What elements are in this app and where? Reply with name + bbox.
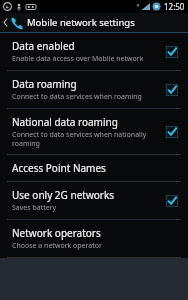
button[interactable]: Toggle	[166, 195, 178, 207]
button[interactable]: Access Point Names	[0, 155, 188, 181]
staticText: Choose a network operator	[12, 241, 102, 251]
button[interactable]: National data roaming	[0, 109, 188, 154]
staticText: Connect to data services when nationally…	[12, 130, 147, 148]
button[interactable]: Toggle	[166, 84, 178, 96]
staticText: Saves battery	[12, 203, 57, 213]
button[interactable]: Data enabled	[0, 33, 188, 70]
button[interactable]: Network operators	[0, 220, 188, 257]
other: Back	[3, 17, 8, 28]
staticText: 12:50	[164, 1, 185, 12]
staticText: Enable data access over Mobile network	[12, 54, 144, 64]
button[interactable]: Toggle	[166, 46, 178, 58]
button[interactable]: Back	[0, 13, 188, 32]
staticText: Network operators	[12, 226, 101, 240]
staticText: Connect to data services when roaming	[12, 92, 142, 102]
button[interactable]: Data roaming	[0, 71, 188, 108]
staticText: National data roaming	[12, 115, 118, 129]
staticText: Mobile network settings	[27, 16, 135, 29]
staticText: Data roaming	[12, 77, 77, 91]
button[interactable]: Use only 2G networks	[0, 182, 188, 219]
staticText: Data enabled	[12, 39, 75, 53]
button[interactable]: Toggle	[166, 126, 178, 138]
staticText: Access Point Names	[12, 161, 106, 175]
staticText: Use only 2G networks	[12, 188, 115, 202]
